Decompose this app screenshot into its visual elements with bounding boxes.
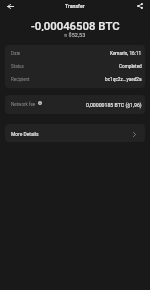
staticText: bc1qc2z...yaed2a	[105, 77, 142, 83]
button[interactable]: Recipient	[5, 73, 145, 86]
staticText: Status	[11, 64, 24, 69]
staticText: 0,00000185 BTC ($1,96)	[86, 102, 142, 108]
staticText: Network fee	[11, 102, 36, 107]
staticText: ≈ $52,53	[64, 32, 86, 38]
button[interactable]: Share	[133, 0, 147, 12]
button[interactable]: Back	[3, 0, 17, 12]
staticText: Transfer	[65, 3, 85, 9]
staticText: -0,00046508 BTC	[31, 19, 120, 31]
staticText: Completed	[119, 64, 142, 70]
staticText: More Details	[11, 131, 39, 137]
staticText: Recipient	[11, 77, 30, 82]
button[interactable]: More Details	[5, 124, 145, 142]
staticText: Date	[11, 51, 21, 56]
button[interactable]: Network fee	[5, 95, 145, 114]
staticText: Kemarin, 16:11	[110, 51, 142, 57]
button[interactable]: Date	[5, 47, 145, 60]
button[interactable]: Status	[5, 60, 145, 73]
